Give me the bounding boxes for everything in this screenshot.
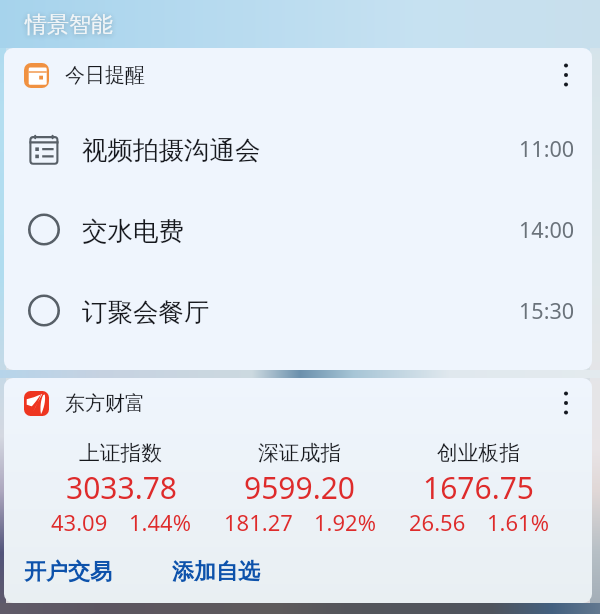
staticText: 订聚会餐厅 bbox=[82, 296, 210, 328]
button[interactable]: 订聚会餐厅 bbox=[4, 271, 592, 352]
button[interactable]: 添加自选 bbox=[172, 558, 260, 586]
button[interactable]: 创业板指 bbox=[389, 439, 568, 539]
button[interactable]: 东方财富 bbox=[24, 390, 554, 416]
staticText: 9599.20 bbox=[244, 467, 355, 504]
staticText: 26.56 bbox=[409, 507, 466, 537]
button[interactable]: 上证指数 bbox=[32, 439, 210, 539]
staticText: 14:00 bbox=[519, 215, 575, 244]
staticText: 上证指数 bbox=[79, 440, 163, 466]
button[interactable]: 交水电费 bbox=[4, 190, 592, 271]
staticText: 视频拍摄沟通会 bbox=[82, 134, 261, 166]
button[interactable]: 开户交易 bbox=[24, 558, 112, 586]
staticText: 3033.78 bbox=[66, 467, 177, 504]
staticText: 11:00 bbox=[519, 134, 575, 163]
staticText: 东方财富 bbox=[65, 391, 145, 416]
staticText: 创业板指 bbox=[437, 440, 521, 466]
button[interactable]: 今日提醒 bbox=[24, 62, 554, 88]
staticText: 43.09 bbox=[51, 507, 108, 537]
staticText: 交水电费 bbox=[82, 215, 184, 247]
staticText: 1.61% bbox=[487, 507, 549, 537]
staticText: 深证成指 bbox=[258, 440, 342, 466]
button[interactable]: More options for 今日提醒 bbox=[554, 63, 578, 87]
staticText: 15:30 bbox=[519, 296, 575, 325]
staticText: 181.27 bbox=[224, 507, 293, 537]
staticText: 1.44% bbox=[129, 507, 191, 537]
button[interactable]: 视频拍摄沟通会 bbox=[4, 109, 592, 190]
staticText: 1.92% bbox=[314, 507, 376, 537]
staticText: 今日提醒 bbox=[65, 63, 145, 88]
button[interactable]: 深证成指 bbox=[210, 439, 389, 539]
staticText: 情景智能 bbox=[25, 11, 113, 39]
staticText: 1676.75 bbox=[423, 467, 534, 504]
button[interactable]: More options for 东方财富 bbox=[554, 391, 578, 415]
